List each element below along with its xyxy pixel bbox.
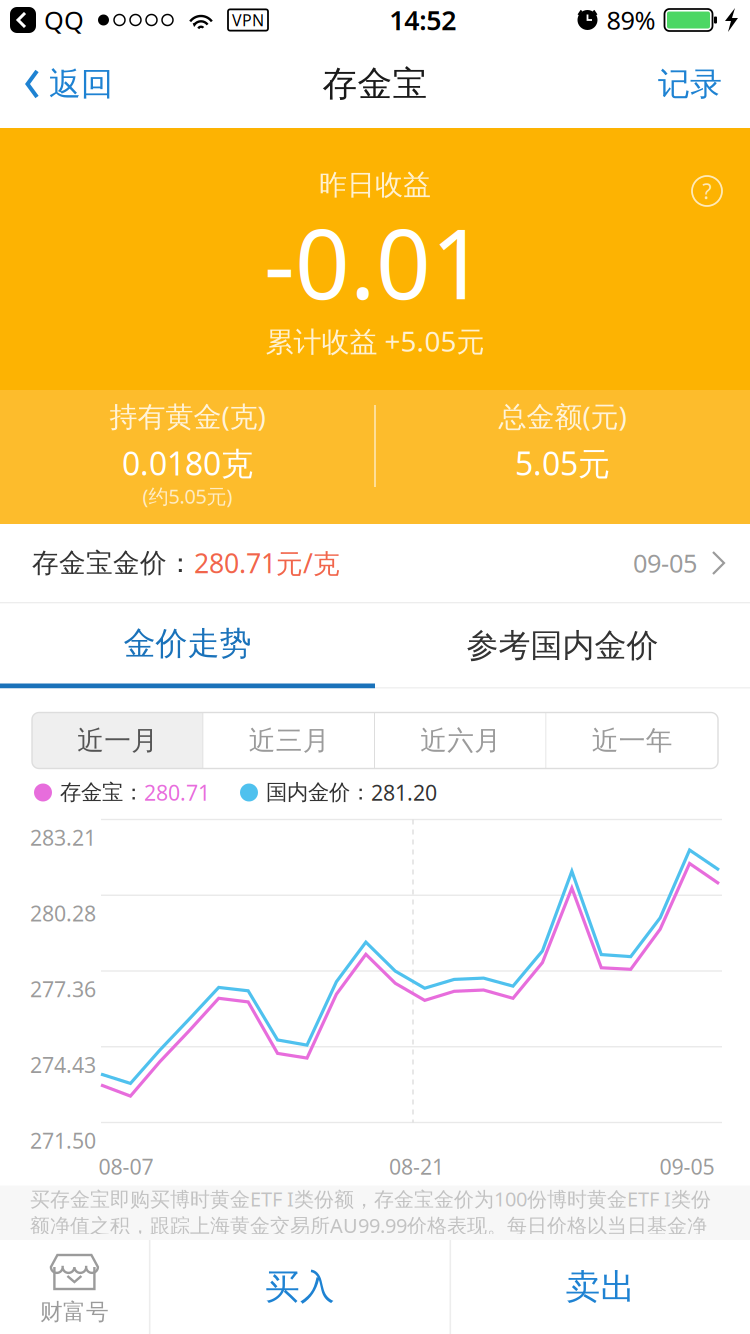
staticText: 09-05 <box>659 1152 714 1181</box>
staticText: 持有黄金(克) <box>109 397 265 435</box>
staticText: 近一月 <box>77 724 158 757</box>
staticText: 存金宝 <box>322 63 427 105</box>
button[interactable]: 记录 <box>638 40 750 128</box>
staticText: ? <box>702 177 711 205</box>
button[interactable]: 帮助 <box>680 164 734 218</box>
button[interactable]: 金价走势 <box>0 603 375 688</box>
staticText: 277.36 <box>30 975 96 1003</box>
staticText: 280.71 <box>144 778 210 807</box>
staticText: 财富号 <box>40 1298 109 1326</box>
staticText: 昨日收益 <box>319 168 431 202</box>
staticText: 08-21 <box>389 1152 444 1181</box>
staticText: 14:52 <box>389 2 456 38</box>
staticText: 280.28 <box>30 899 96 927</box>
staticText: 存金宝： <box>60 779 144 806</box>
button[interactable]: 近六月 <box>375 712 546 768</box>
staticText: QQ <box>44 3 84 37</box>
staticText: 281.20 <box>371 778 437 807</box>
staticText: 返回 <box>49 64 113 104</box>
staticText: 0.0180克 <box>122 442 253 484</box>
staticText: 近六月 <box>420 724 501 757</box>
staticText: (约5.05元) <box>142 483 232 509</box>
staticText: VPN <box>232 9 264 31</box>
staticText: 存金宝金价： <box>32 547 194 579</box>
staticText: 金价走势 <box>123 624 251 663</box>
staticText: 参考国内金价 <box>466 626 658 665</box>
staticText: 09-05 <box>633 546 697 580</box>
staticText: 274.43 <box>30 1051 96 1079</box>
staticText: 08-07 <box>98 1152 153 1181</box>
button[interactable]: 买入 <box>150 1240 449 1334</box>
staticText: 5.05元 <box>515 442 610 484</box>
staticText: 总金额(元) <box>498 397 626 435</box>
staticText: 累计收益 +5.05元 <box>265 322 484 360</box>
staticText: 卖出 <box>566 1266 636 1308</box>
button[interactable]: 卖出 <box>451 1240 750 1334</box>
staticText: 280.71元/克 <box>194 545 340 581</box>
staticText: 271.50 <box>30 1126 96 1155</box>
button[interactable]: 近三月 <box>203 712 375 768</box>
staticText: 买存金宝即购买博时黄金ETF I类份额，存金宝金价为100份博时黄金ETF I类… <box>30 1185 711 1239</box>
button[interactable]: 财富号 <box>0 1240 149 1334</box>
button[interactable]: 返回 <box>0 40 127 128</box>
staticText: 记录 <box>658 64 722 104</box>
button[interactable]: 近一年 <box>546 712 718 768</box>
button[interactable]: 参考国内金价 <box>375 603 750 688</box>
staticText: -0.01 <box>264 198 486 326</box>
staticText: 89% <box>606 3 655 37</box>
staticText: 近三月 <box>249 724 330 757</box>
button[interactable]: 近一月 <box>32 712 203 768</box>
staticText: 国内金价： <box>266 779 371 806</box>
button[interactable]: 存金宝金价： <box>0 524 750 602</box>
staticText: 买入 <box>265 1266 335 1308</box>
staticText: 283.21 <box>30 823 96 852</box>
staticText: 近一年 <box>592 724 673 757</box>
